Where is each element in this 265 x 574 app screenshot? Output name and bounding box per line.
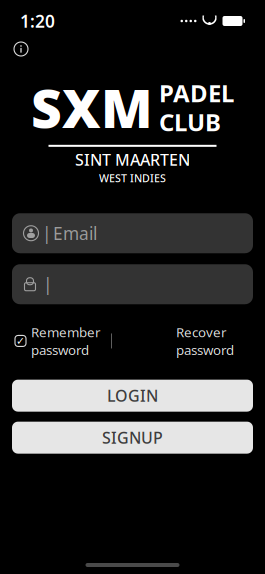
button[interactable]: SIGNUP [0,422,265,454]
staticText: PADEL [159,77,234,109]
staticText: LOGIN [107,385,158,406]
staticText: WEST INDIES [99,171,166,185]
staticText: Recover password [176,323,234,359]
staticText: SIGNUP [102,427,163,448]
button[interactable]: Recover password [176,319,234,363]
staticText: | [43,273,53,296]
button[interactable]: Information [8,36,34,62]
button[interactable]: ✓ [15,319,101,363]
staticText: Email [53,222,97,245]
staticText: SXM [31,72,153,143]
staticText: CLUB [159,106,221,138]
staticText: SINT MAARTEN [75,149,190,170]
button[interactable]: LOGIN [0,380,265,412]
staticText: ✓ [16,335,25,347]
staticText: Remember password [31,323,101,359]
staticText: | [42,222,52,245]
staticText: 1:20 [20,9,55,32]
